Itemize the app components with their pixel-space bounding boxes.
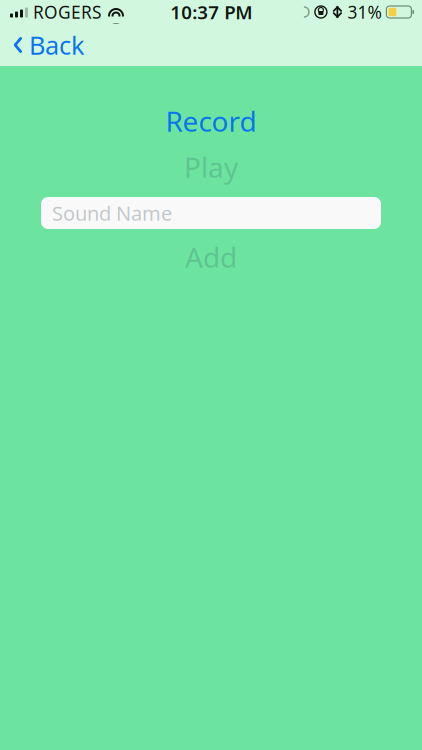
staticText: ROGERS	[33, 0, 102, 23]
button[interactable]: Add	[0, 243, 422, 271]
button[interactable]: Back	[0, 24, 95, 66]
staticText: Sound Name	[52, 200, 172, 226]
staticText: Record	[165, 102, 256, 140]
staticText: Play	[184, 148, 238, 186]
button[interactable]: Play	[0, 153, 422, 181]
staticText: 31%	[347, 0, 381, 23]
staticText: Back	[29, 28, 85, 62]
staticText: 10:37 PM	[170, 0, 252, 24]
staticText: Add	[185, 238, 237, 276]
button[interactable]: Record	[0, 107, 422, 135]
